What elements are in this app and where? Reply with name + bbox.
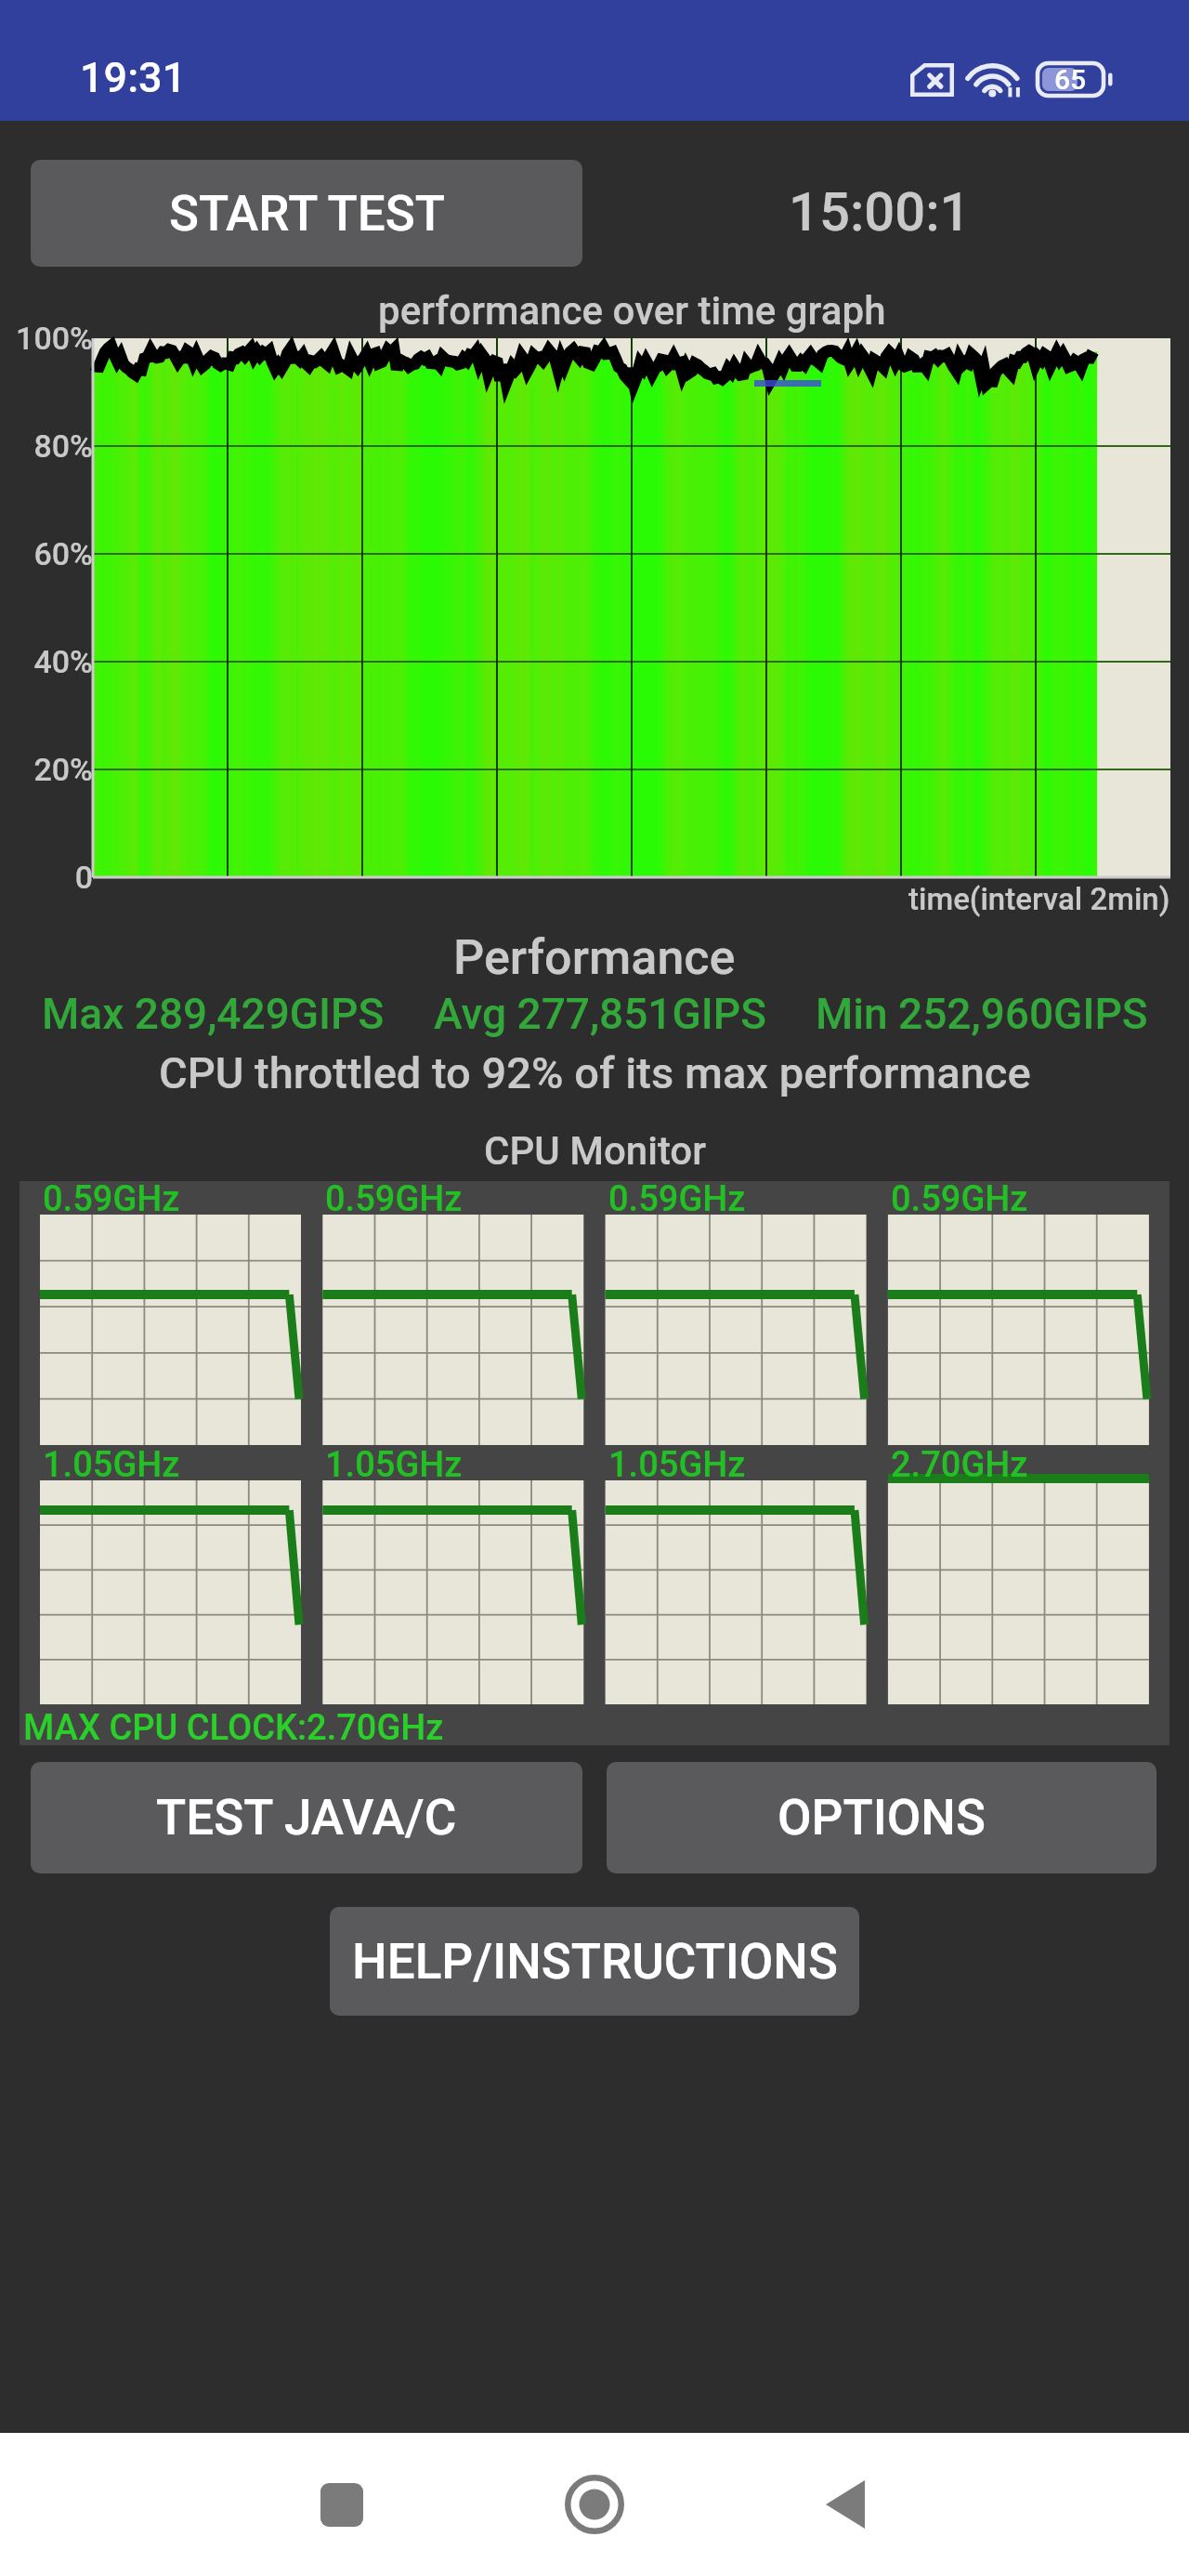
button[interactable]: START TEST: [31, 160, 582, 267]
staticText: MAX CPU CLOCK:2.70GHz: [23, 1707, 444, 1749]
staticText: CPU Monitor: [484, 1128, 706, 1174]
staticText: 0.59GHz: [891, 1178, 1028, 1220]
staticText: 0.59GHz: [325, 1178, 463, 1220]
staticText: Performance: [453, 929, 736, 986]
staticText: 1.05GHz: [608, 1444, 746, 1486]
staticText: Avg 277,851GIPS: [434, 989, 767, 1039]
staticText: CPU throttled to 92% of its max performa…: [159, 1047, 1031, 1098]
staticText: time(interval 2min): [908, 881, 1170, 917]
button[interactable]: OPTIONS: [607, 1762, 1156, 1873]
staticText: 65: [1054, 63, 1087, 96]
staticText: 19:31: [80, 53, 187, 102]
staticText: Min 252,960GIPS: [816, 989, 1148, 1039]
staticText: 1.05GHz: [43, 1444, 180, 1486]
staticText: TEST JAVA/C: [156, 1789, 457, 1847]
button[interactable]: Recent apps: [265, 2448, 419, 2561]
button[interactable]: Home: [517, 2448, 672, 2561]
staticText: 0.59GHz: [43, 1178, 180, 1220]
staticText: 0: [74, 859, 93, 896]
staticText: 0.59GHz: [608, 1178, 746, 1220]
staticText: performance over time graph: [378, 288, 886, 334]
button[interactable]: Back: [769, 2448, 923, 2561]
staticText: 20%: [33, 751, 93, 788]
staticText: OPTIONS: [777, 1789, 986, 1847]
staticText: Max 289,429GIPS: [42, 989, 385, 1039]
staticText: 1.05GHz: [325, 1444, 463, 1486]
staticText: HELP/INSTRUCTIONS: [352, 1933, 838, 1991]
button[interactable]: TEST JAVA/C: [31, 1762, 582, 1873]
staticText: 60%: [33, 535, 93, 572]
staticText: 80%: [33, 427, 93, 465]
staticText: 2.70GHz: [891, 1444, 1028, 1486]
staticText: 15:00:1: [789, 180, 971, 243]
button[interactable]: HELP/INSTRUCTIONS: [330, 1907, 859, 2016]
staticText: START TEST: [169, 185, 445, 243]
staticText: 100%: [16, 320, 93, 357]
staticText: 40%: [33, 643, 93, 680]
